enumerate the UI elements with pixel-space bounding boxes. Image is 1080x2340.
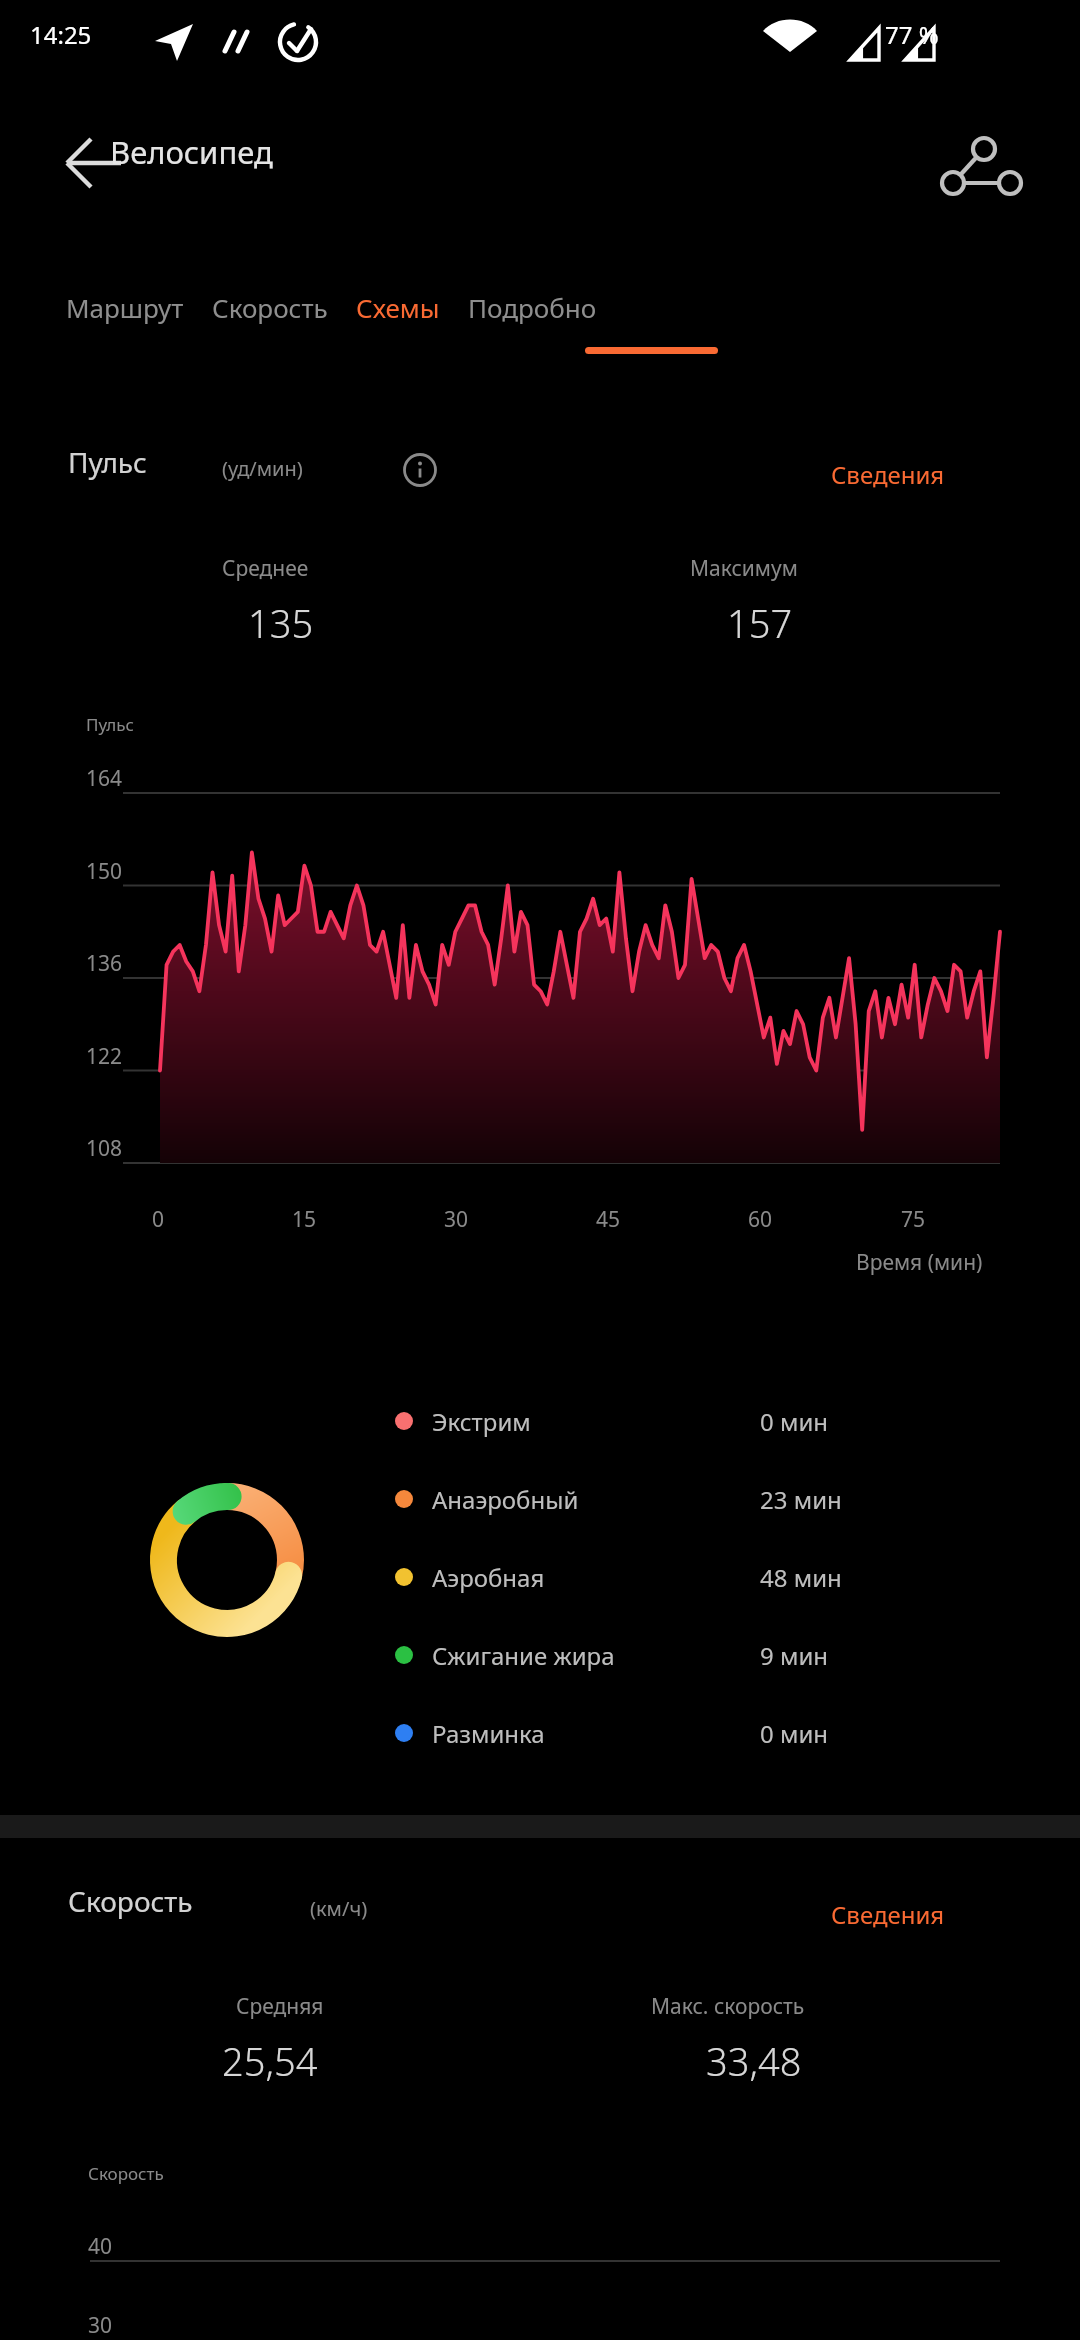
staticText: Аэробная [432, 1561, 545, 1594]
staticText: Пульс [68, 443, 147, 481]
staticText: 164 [86, 764, 123, 793]
button[interactable]: Сведения [823, 1890, 953, 1939]
staticText: 135 [248, 597, 314, 649]
staticText: 0 мин [760, 1717, 829, 1750]
staticText: 30 [88, 2311, 113, 2340]
staticText: Сжигание жира [432, 1639, 615, 1672]
staticText: Велосипед [110, 131, 273, 173]
button[interactable]: Поделиться [945, 127, 1019, 201]
staticText: Пульс [86, 713, 134, 736]
staticText: 40 [88, 2232, 113, 2261]
staticText: Макс. скорость [651, 1992, 805, 2021]
staticText: Разминка [432, 1717, 545, 1750]
staticText: (уд/мин) [222, 455, 303, 482]
button[interactable]: Разминка [380, 1702, 980, 1764]
staticText: 77 % [885, 18, 939, 51]
button[interactable]: Сведения [823, 450, 953, 499]
staticText: Среднее [222, 554, 309, 583]
button[interactable]: Назад [61, 130, 127, 196]
button[interactable]: Маршрут [60, 278, 190, 337]
button[interactable]: Схемы [350, 278, 446, 337]
staticText: (км/ч) [310, 1895, 368, 1922]
button[interactable]: Экстрим [380, 1390, 980, 1452]
staticText: 0 мин [760, 1405, 829, 1438]
staticText: 45 [596, 1205, 621, 1234]
staticText: Анаэробный [432, 1483, 579, 1516]
staticText: 15 [292, 1205, 317, 1234]
staticText: Маршрут [66, 290, 184, 325]
button[interactable]: Анаэробный [380, 1468, 980, 1530]
staticText: 23 мин [760, 1483, 842, 1516]
staticText: Скорость [212, 290, 328, 325]
staticText: Средняя [236, 1992, 324, 2021]
staticText: 150 [86, 857, 123, 886]
staticText: 25,54 [222, 2035, 318, 2087]
staticText: Время (мин) [856, 1248, 983, 1277]
button[interactable]: Аэробная [380, 1546, 980, 1608]
button[interactable]: Подробно [462, 278, 603, 337]
button[interactable]: Сжигание жира [380, 1624, 980, 1686]
staticText: 48 мин [760, 1561, 842, 1594]
staticText: 30 [444, 1205, 469, 1234]
staticText: 9 мин [760, 1639, 829, 1672]
staticText: Скорость [68, 1882, 193, 1920]
staticText: Сведения [831, 1898, 945, 1931]
staticText: Схемы [356, 290, 440, 325]
staticText: 0 [152, 1205, 165, 1234]
staticText: 136 [86, 949, 123, 978]
staticText: 33,48 [706, 2035, 802, 2087]
staticText: 122 [86, 1042, 123, 1071]
staticText: 108 [86, 1134, 123, 1163]
staticText: Экстрим [432, 1405, 531, 1438]
button[interactable]: Скорость [206, 278, 334, 337]
staticText: Максимум [690, 554, 798, 583]
staticText: Скорость [88, 2162, 164, 2185]
staticText: 60 [748, 1205, 773, 1234]
staticText: Подробно [468, 290, 597, 325]
staticText: 75 [901, 1205, 926, 1234]
staticText: 14:25 [30, 18, 92, 51]
staticText: Сведения [831, 458, 945, 491]
staticText: 157 [727, 597, 793, 649]
